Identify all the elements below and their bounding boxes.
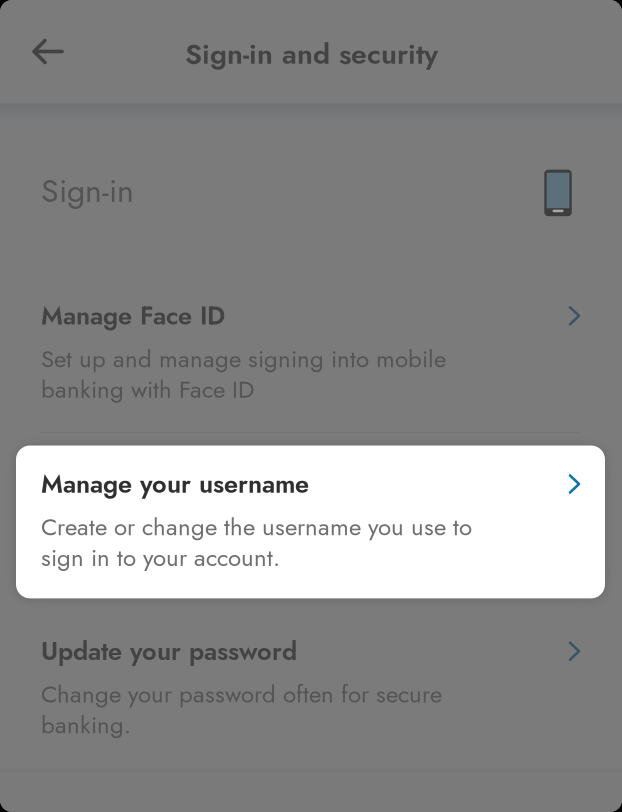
button[interactable]: Manage your username <box>16 445 605 598</box>
staticText: banking. <box>41 707 131 742</box>
button[interactable]: Update your password <box>41 638 581 740</box>
staticText: Sign-in <box>41 168 134 214</box>
button[interactable]: Manage Face ID <box>41 302 581 405</box>
staticText: sign in to your account. <box>41 540 280 575</box>
staticText: Create or change the username you use to <box>41 510 472 544</box>
staticText: banking with Face ID <box>41 372 254 407</box>
staticText: Sign-in and security <box>185 33 438 74</box>
staticText: Manage Face ID <box>41 297 225 334</box>
button[interactable]: Back <box>18 38 78 64</box>
staticText: Manage your username <box>41 466 309 502</box>
staticText: Change your password often for secure <box>41 677 442 712</box>
staticText: Set up and manage signing into mobile <box>41 341 446 376</box>
staticText: Update your password <box>41 633 297 669</box>
